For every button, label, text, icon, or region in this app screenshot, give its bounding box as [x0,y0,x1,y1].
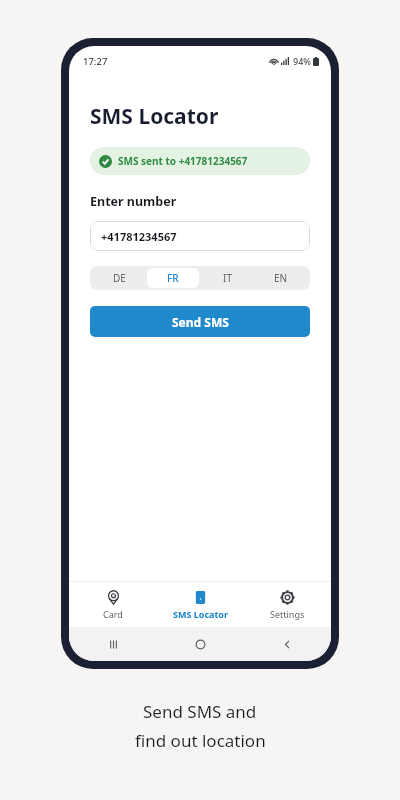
button[interactable]: IT [201,268,253,288]
staticText: Card [103,608,123,620]
staticText: find out location [135,729,266,752]
button[interactable]: Card [69,586,157,624]
button[interactable]: Settings [244,586,331,624]
staticText: 17:27 [83,55,108,68]
staticText: DE [113,271,126,285]
other: SMS Locator [193,590,208,605]
button[interactable]: SMS sent to +41781234567 [90,147,310,175]
staticText: IT [223,271,232,285]
button[interactable]: Home [157,627,244,661]
staticText: +41781234567 [101,229,177,244]
button[interactable]: EN [255,268,307,288]
staticText: Send SMS and [143,700,257,723]
button[interactable]: FR [147,268,199,288]
button[interactable]: DE [93,268,145,288]
staticText: FR [167,271,179,285]
button[interactable]: Recents [69,627,157,661]
other: Settings [280,590,295,605]
staticText: SMS Locator [90,102,219,131]
button[interactable]: +41781234567 [90,221,310,251]
staticText: SMS Locator [173,608,228,620]
staticText: EN [274,271,288,285]
button[interactable]: Back [244,627,331,661]
button[interactable]: Send SMS [90,306,310,337]
button[interactable]: SMS Locator [157,586,244,624]
staticText: 94% [293,55,311,67]
staticText: Send SMS [172,314,229,330]
staticText: Enter number [90,193,177,210]
staticText: Settings [270,608,305,620]
other: Card [106,590,121,605]
staticText: SMS sent to +41781234567 [118,154,248,168]
